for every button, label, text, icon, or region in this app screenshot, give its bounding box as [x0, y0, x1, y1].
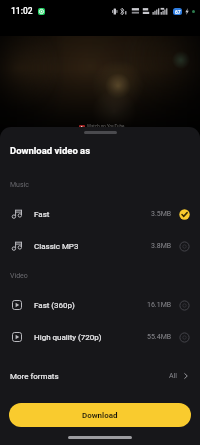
staticText: High quality (720p) [34, 333, 102, 342]
staticText: Watch on YouTube [87, 124, 125, 129]
button[interactable]: Download [9, 403, 191, 427]
button[interactable]: Classic MP3 [0, 231, 200, 261]
staticText: All [169, 372, 177, 380]
button[interactable]: Fast [0, 199, 200, 229]
staticText: Fast [34, 210, 50, 219]
staticText: 3.5MB [151, 210, 172, 218]
staticText: Classic MP3 [34, 242, 79, 251]
staticText: Video [10, 272, 28, 280]
staticText: 55.4MB [147, 333, 172, 341]
staticText: 67 [175, 9, 181, 15]
staticText: Music [10, 181, 29, 189]
staticText: 16.1MB [147, 301, 172, 309]
button[interactable]: Fast (360p) [0, 290, 200, 320]
staticText: More formats [10, 372, 59, 381]
staticText: 11:02 [11, 6, 33, 16]
staticText: Download [82, 411, 118, 420]
staticText: Fast (360p) [34, 301, 75, 310]
staticText: 3.8MB [151, 242, 172, 250]
button[interactable]: More formats [0, 363, 200, 389]
button[interactable]: High quality (720p) [0, 322, 200, 352]
staticText: Download video as [10, 145, 91, 156]
